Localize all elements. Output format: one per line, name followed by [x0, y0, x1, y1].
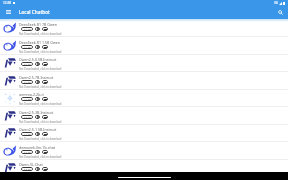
- staticText: DeepSeek-R1 1.5B Qwen: [19, 40, 60, 44]
- button[interactable]: DeepSeek-R1 7B Qwen: [0, 19, 288, 37]
- staticText: Local Chatbot: [19, 9, 50, 15]
- staticText: Not Downloaded, click to download: [19, 155, 62, 158]
- staticText: Qwen2.5-3B-Instruct: [19, 110, 54, 114]
- staticText: Not Downloaded, click to download: [19, 50, 62, 53]
- staticText: deepseek-llm-7b-chat: [19, 145, 55, 149]
- staticText: 12:38: [3, 1, 12, 5]
- staticText: Not Downloaded, click to download: [19, 137, 62, 140]
- button[interactable]: DeepSeek-R1 1.5B Qwen: [0, 37, 288, 55]
- staticText: Not Downloaded, click to download: [19, 85, 62, 88]
- staticText: Not Downloaded, click to download: [19, 120, 62, 123]
- staticText: Not Downloaded, click to download: [19, 32, 62, 35]
- staticText: Qwen2.5-0.5B-Instruct: [19, 57, 57, 61]
- button[interactable]: Qwen2.5-3B-Instruct: [0, 107, 288, 125]
- staticText: Not Downloaded, click to download: [19, 67, 62, 70]
- staticText: 1.7 GB: [24, 98, 31, 101]
- staticText: 4.7 GB: [24, 28, 31, 31]
- button[interactable]: gemma-2-2b-it: [0, 89, 288, 107]
- staticText: 3G: [274, 1, 278, 5]
- button[interactable]: Search: [274, 6, 287, 18]
- staticText: 4.2 GB: [24, 151, 31, 154]
- staticText: 1.1 GB: [24, 133, 31, 136]
- button[interactable]: Qwen2.5-0.5B-Instruct: [0, 54, 288, 72]
- button[interactable]: Qwen2.5-1.5B-Instruct: [0, 124, 288, 142]
- staticText: gemma-2-2b-it: [19, 92, 44, 96]
- button[interactable]: Qwen2.5-7B-Instruct: [0, 72, 288, 90]
- staticText: 4.7 GB: [24, 81, 31, 84]
- staticText: Qwen2.5-1.5B-Instruct: [19, 127, 57, 131]
- staticText: Qwen2.5-7B-Instruct: [19, 75, 54, 79]
- staticText: 5.8 GB: [24, 168, 31, 171]
- staticText: 0.4 GB: [24, 63, 31, 66]
- staticText: 2.0 GB: [24, 116, 31, 119]
- button[interactable]: deepseek-llm-7b-chat: [0, 142, 288, 160]
- staticText: DeepSeek-R1 7B Qwen: [19, 22, 57, 26]
- staticText: Qwen-VL-Chat: [19, 162, 43, 166]
- button[interactable]: Open navigation menu: [0, 6, 16, 18]
- staticText: Not Downloaded, click to download: [19, 102, 62, 105]
- button[interactable]: Qwen-VL-Chat: [0, 159, 288, 177]
- staticText: 1.1 GB: [24, 46, 31, 49]
